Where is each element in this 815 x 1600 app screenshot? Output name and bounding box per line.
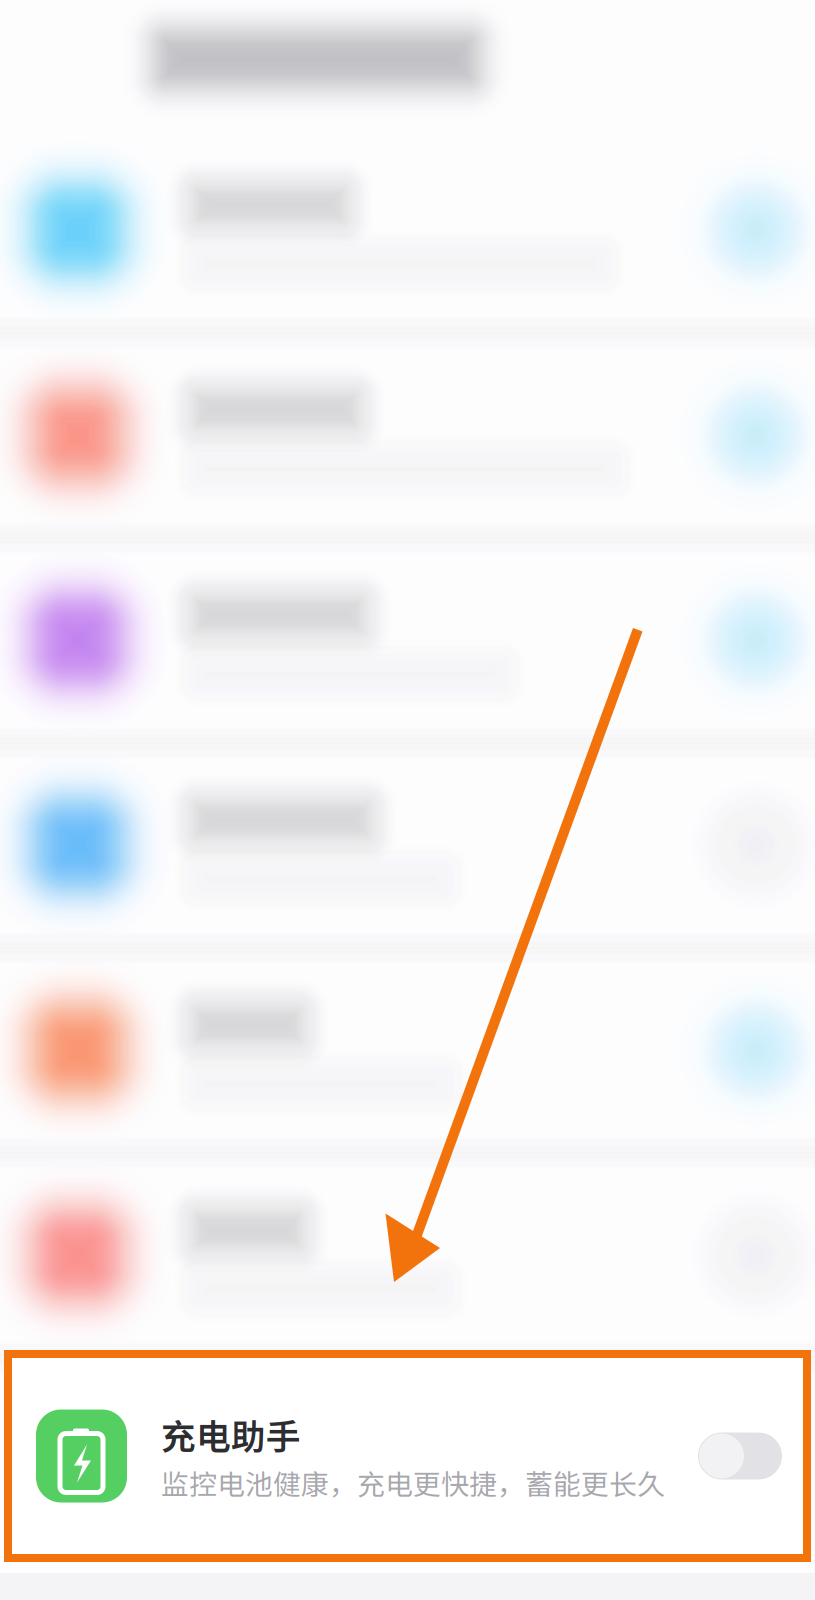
staticText: 监控电池健康，充电更快捷，蓄能更长久: [161, 1462, 665, 1503]
staticText: 充电助手: [161, 1409, 301, 1459]
button[interactable]: 充电助手: [8, 1354, 807, 1558]
